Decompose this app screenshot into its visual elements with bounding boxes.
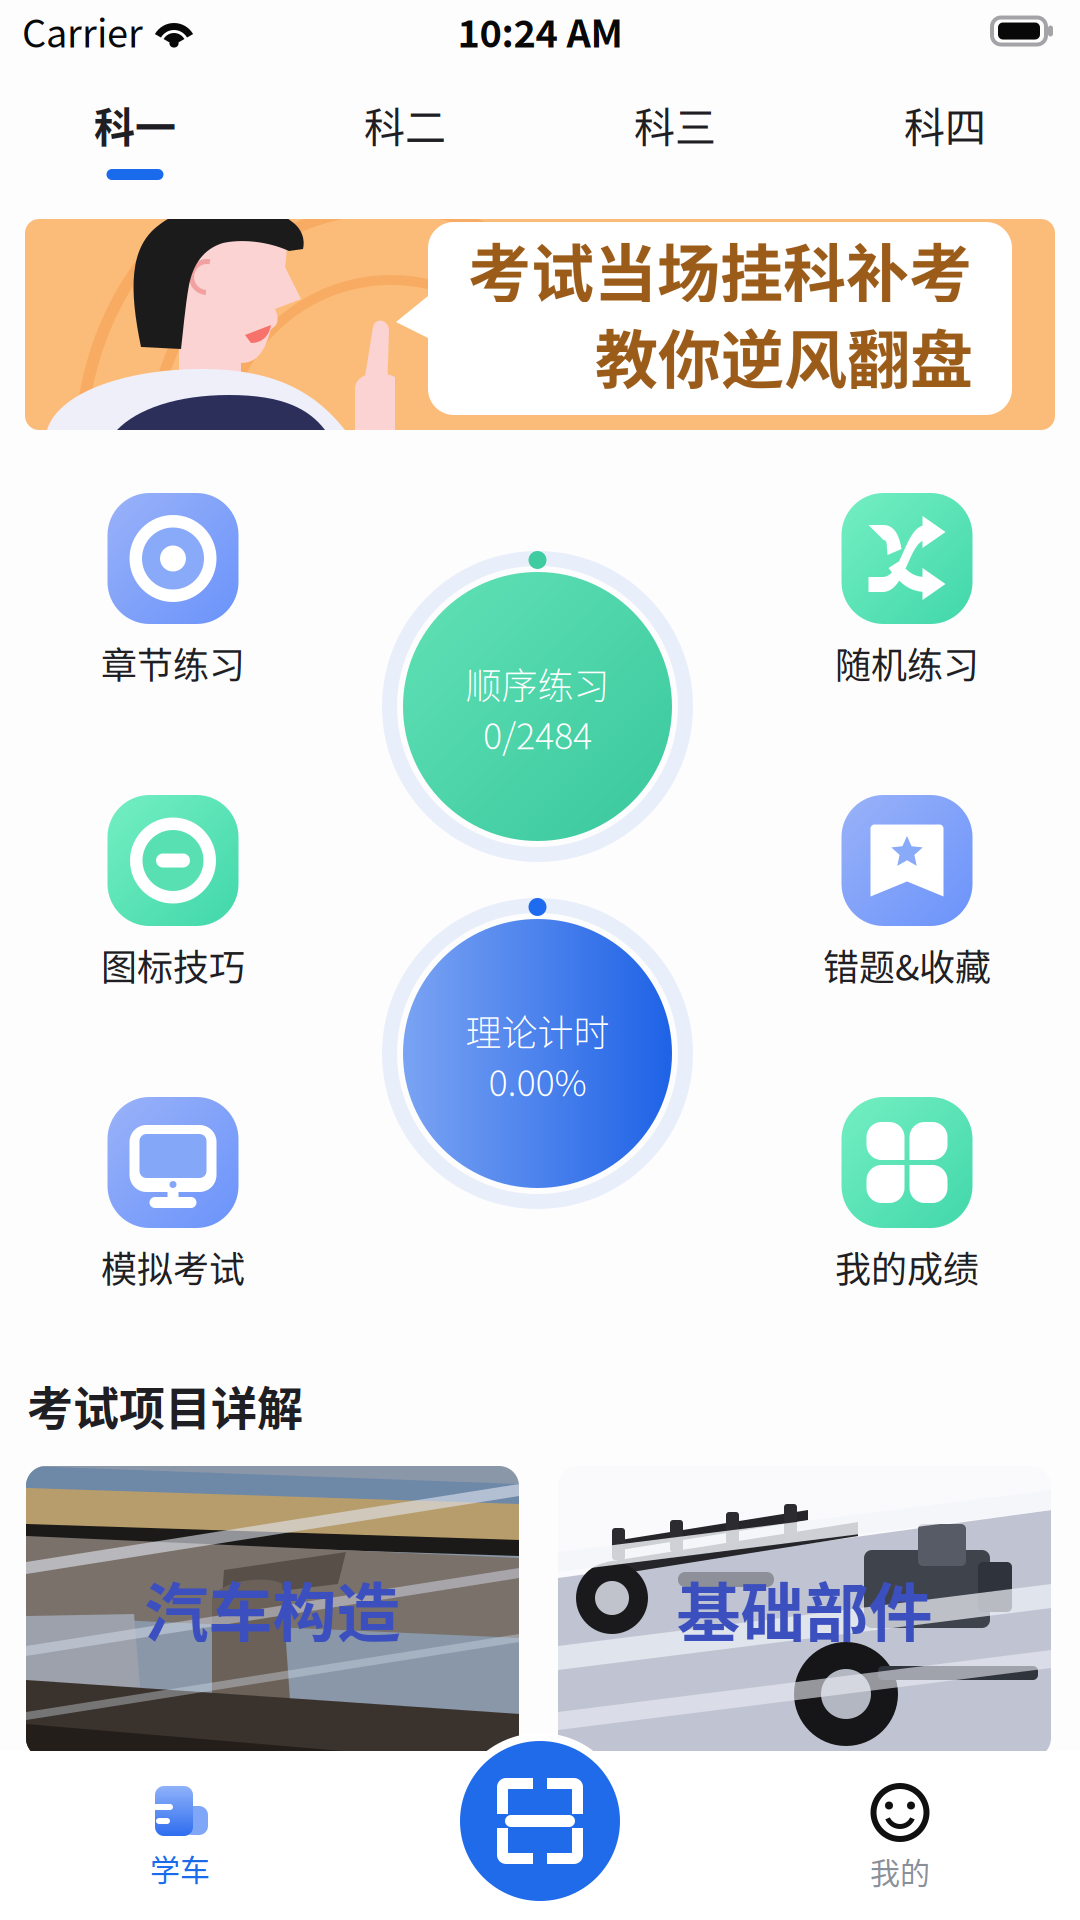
staticText: 基础部件 (676, 1562, 932, 1654)
staticText: 考试当场挂科补考 (468, 223, 972, 315)
button[interactable]: 模拟考试 (23, 1097, 323, 1289)
staticText: 图标技巧 (101, 939, 245, 991)
staticText: 汽车构造 (144, 1562, 400, 1654)
staticText: 我的 (870, 1849, 930, 1893)
button[interactable]: 科一 (0, 76, 270, 184)
staticText: 理论计时 (465, 1004, 609, 1056)
staticText: 科二 (364, 95, 446, 154)
button[interactable]: 错题&收藏 (757, 795, 1057, 987)
staticText: 教你逆风翻盘 (595, 309, 973, 401)
staticText: 考试项目详解 (27, 1372, 303, 1438)
button[interactable]: 科四 (810, 76, 1080, 184)
button[interactable]: 考试当场挂科补考 (25, 219, 1055, 430)
staticText: 章节练习 (101, 637, 245, 689)
staticText: 0/2484 (483, 707, 592, 759)
staticText: 随机练习 (835, 637, 979, 689)
button[interactable]: 汽车构造 (26, 1466, 519, 1758)
staticText: 错题&收藏 (823, 939, 991, 991)
button[interactable]: 理论计时 (382, 898, 693, 1209)
button[interactable]: 学车 (0, 1751, 360, 1920)
staticText: 0.00% (488, 1054, 586, 1106)
staticText: 顺序练习 (465, 657, 609, 709)
button[interactable]: 随机练习 (757, 493, 1057, 685)
button[interactable]: 顺序练习 (382, 551, 693, 862)
button[interactable]: 基础部件 (558, 1466, 1051, 1758)
staticText: 科一 (94, 95, 176, 154)
button[interactable]: 图标技巧 (23, 795, 323, 987)
staticText: 科四 (904, 95, 986, 154)
button[interactable]: 扫一扫 (460, 1741, 620, 1901)
button[interactable]: 科二 (270, 76, 540, 184)
staticText: 10:24 AM (457, 3, 622, 58)
button[interactable]: 科三 (540, 76, 810, 184)
button[interactable]: 我的成绩 (757, 1097, 1057, 1289)
staticText: 学车 (150, 1846, 210, 1890)
staticText: 模拟考试 (101, 1241, 245, 1293)
button[interactable]: 我的 (720, 1751, 1080, 1920)
button[interactable]: 章节练习 (23, 493, 323, 685)
staticText: 科三 (634, 95, 716, 154)
staticText: Carrier (22, 3, 143, 58)
staticText: 我的成绩 (835, 1241, 979, 1293)
